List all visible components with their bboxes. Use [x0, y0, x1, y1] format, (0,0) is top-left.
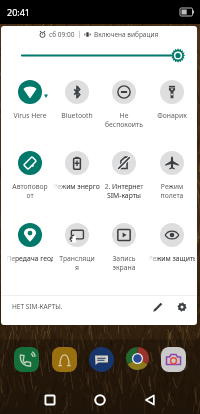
staticText: Автоповорот [11, 182, 49, 200]
staticText: 2. Интернет SIM-карты [101, 182, 147, 200]
staticText: Запись экрана [105, 254, 143, 272]
staticText: Трансляция [58, 254, 96, 272]
button[interactable]: Не беспокоить [100, 80, 147, 135]
button[interactable]: Автоповорот [6, 151, 53, 206]
staticText: Фонарик [153, 111, 191, 120]
button[interactable]: Передача геоданных [6, 223, 53, 278]
staticText: Режим энергосбережения [53, 182, 100, 191]
staticText: Virus Here [11, 111, 49, 120]
button[interactable]: Обзор [38, 388, 62, 412]
staticText: сб 09:00 [49, 30, 75, 39]
button[interactable]: Изменить [150, 299, 166, 315]
staticText: НЕТ SIM-КАРТЫ. [12, 302, 63, 311]
staticText: Включена вибрация [94, 30, 159, 39]
button[interactable]: Настройки [174, 299, 190, 315]
button[interactable]: phone [14, 347, 39, 372]
button[interactable]: 2. Интернет SIM-карты [100, 151, 147, 206]
button[interactable]: camera [161, 347, 186, 372]
staticText: Bluetooth [58, 111, 96, 120]
staticText: Режим защиты зрения [148, 254, 195, 263]
button[interactable]: Режим защиты зрения [148, 223, 195, 278]
staticText: 20:41 [7, 6, 31, 18]
button[interactable]: chrome [125, 346, 150, 371]
button[interactable]: Трансляция [53, 223, 100, 278]
button[interactable]: Фонарик [148, 80, 195, 135]
button[interactable]: messages [89, 347, 114, 372]
staticText: Не беспокоить [105, 111, 143, 129]
button[interactable]: Bluetooth [53, 80, 100, 135]
staticText: Режим полета [153, 182, 191, 200]
button[interactable]: Режим полета [148, 151, 195, 206]
button[interactable]: Главный экран [88, 388, 112, 412]
button[interactable]: Virus Here [6, 80, 53, 135]
button[interactable]: Запись экрана [100, 223, 147, 278]
button[interactable]: Назад [138, 388, 162, 412]
staticText: Передача геоданных [6, 254, 53, 263]
button[interactable]: Режим энергосбережения [53, 151, 100, 206]
button[interactable]: contacts [52, 347, 77, 372]
